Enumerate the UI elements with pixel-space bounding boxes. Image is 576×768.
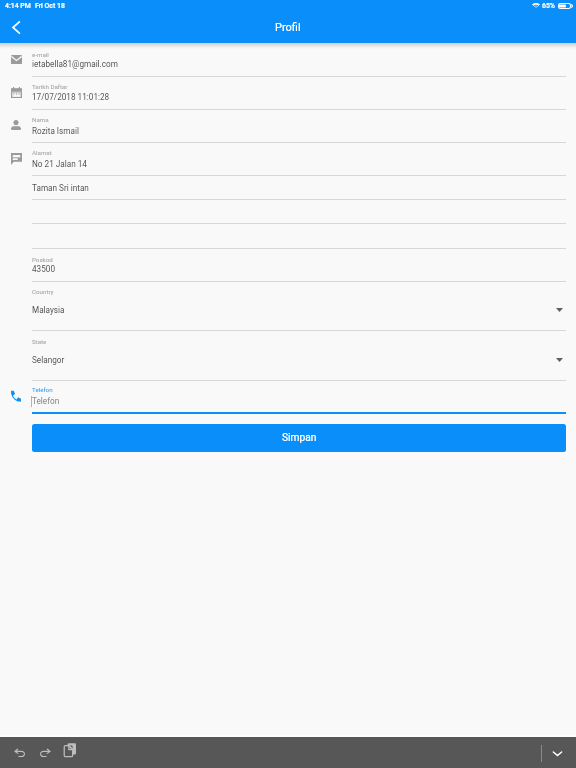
button[interactable]: Redo bbox=[33, 740, 57, 764]
button[interactable]: Paste bbox=[58, 738, 82, 762]
button[interactable]: Undo bbox=[8, 740, 32, 764]
button[interactable]: Nama bbox=[0, 109, 576, 142]
button[interactable]: Poskod bbox=[0, 247, 576, 280]
staticText: e-mail bbox=[32, 51, 49, 58]
staticText: 4:14 PM bbox=[5, 2, 31, 10]
staticText: Tarikh Daftar bbox=[32, 83, 68, 90]
staticText: Poskod bbox=[32, 256, 53, 263]
button[interactable]: Alamat line 4 bbox=[0, 223, 576, 247]
staticText: Malaysia bbox=[32, 305, 65, 315]
button[interactable]: Alamat line 3 bbox=[0, 199, 576, 223]
button[interactable]: State bbox=[0, 329, 576, 379]
staticText: No 21 Jalan 14 bbox=[32, 159, 87, 169]
staticText: Nama bbox=[32, 116, 49, 123]
staticText: Selangor bbox=[32, 355, 65, 365]
button[interactable]: Simpan bbox=[32, 424, 566, 452]
button[interactable]: Hide keyboard bbox=[542, 738, 572, 768]
button[interactable]: Country bbox=[0, 280, 576, 329]
button[interactable]: Alamat bbox=[0, 142, 576, 175]
staticText: Alamat bbox=[32, 149, 52, 156]
staticText: Telefon bbox=[32, 386, 53, 393]
staticText: Country bbox=[32, 288, 54, 295]
staticText: State bbox=[32, 338, 47, 345]
staticText: Profil bbox=[275, 21, 301, 34]
staticText: Simpan bbox=[282, 432, 317, 444]
staticText: Telefon bbox=[32, 396, 60, 406]
staticText: 17/07/2018 11:01:28 bbox=[32, 92, 110, 102]
button[interactable]: Tarikh Daftar bbox=[0, 76, 576, 109]
staticText: Taman Sri intan bbox=[32, 183, 89, 193]
button[interactable]: Back bbox=[0, 12, 32, 42]
staticText: Fri Oct 18 bbox=[35, 2, 65, 10]
staticText: 65% bbox=[542, 2, 555, 10]
button[interactable]: Telefon bbox=[0, 379, 576, 412]
staticText: Rozita Ismail bbox=[32, 126, 79, 136]
staticText: ietabella81@gmail.com bbox=[32, 59, 118, 69]
button[interactable]: e-mail bbox=[0, 43, 576, 76]
button[interactable]: Alamat line 2 bbox=[0, 175, 576, 199]
staticText: 43500 bbox=[32, 264, 56, 274]
